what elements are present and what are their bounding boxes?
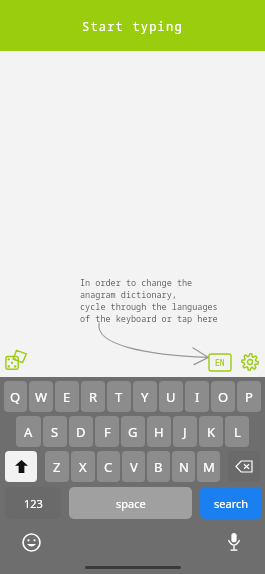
button[interactable]: EN	[209, 354, 231, 371]
staticText: K	[207, 423, 216, 441]
staticText: Y	[141, 388, 149, 406]
staticText: G	[128, 423, 138, 441]
staticText: D	[76, 423, 86, 441]
staticText: search	[214, 496, 249, 511]
button[interactable]: F	[95, 416, 119, 447]
staticText: 123	[24, 496, 43, 511]
button[interactable]: Q	[4, 381, 27, 412]
button[interactable]: I	[185, 381, 209, 412]
staticText: anagram dictionary,	[80, 289, 177, 301]
button[interactable]: Settings	[239, 351, 261, 373]
staticText: Z	[53, 458, 61, 476]
button[interactable]: J	[173, 416, 197, 447]
button[interactable]: S	[43, 416, 67, 447]
staticText: P	[245, 388, 253, 406]
button[interactable]: D	[69, 416, 93, 447]
button[interactable]: M	[197, 451, 220, 482]
staticText: EN	[215, 357, 225, 368]
button[interactable]: Y	[133, 381, 157, 412]
staticText: A	[24, 423, 33, 441]
staticText: cycle through the languages	[80, 301, 218, 313]
button[interactable]: B	[147, 451, 170, 482]
button[interactable]: Start typing	[0, 0, 265, 51]
button[interactable]: R	[81, 381, 105, 412]
button[interactable]: Z	[45, 451, 69, 482]
button[interactable]: A	[16, 416, 41, 447]
button[interactable]: search	[200, 487, 262, 519]
button[interactable]: E	[55, 381, 79, 412]
staticText: Start typing	[82, 18, 183, 34]
staticText: S	[51, 423, 59, 441]
button[interactable]: N	[172, 451, 195, 482]
staticText: W	[35, 388, 48, 406]
staticText: U	[166, 388, 176, 406]
button[interactable]: C	[97, 451, 120, 482]
button[interactable]: T	[107, 381, 131, 412]
button[interactable]: P	[237, 381, 261, 412]
staticText: R	[89, 388, 98, 406]
staticText: space	[116, 496, 146, 511]
staticText: F	[104, 423, 111, 441]
button[interactable]: 123	[5, 487, 61, 519]
button[interactable]: Shuffle anagram	[3, 347, 29, 373]
staticText: In order to change the	[80, 277, 193, 289]
button[interactable]: Voice input	[221, 529, 247, 555]
button[interactable]: K	[199, 416, 223, 447]
staticText: T	[115, 388, 123, 406]
staticText: B	[154, 458, 163, 476]
staticText: Q	[10, 388, 21, 406]
button[interactable]: H	[147, 416, 171, 447]
staticText: J	[183, 423, 187, 441]
staticText: V	[130, 458, 138, 476]
staticText: N	[179, 458, 189, 476]
staticText: C	[104, 458, 113, 476]
button[interactable]: L	[225, 416, 249, 447]
staticText: O	[218, 388, 229, 406]
staticText: of the keyboard or tap here	[80, 313, 218, 325]
button[interactable]: V	[122, 451, 145, 482]
button[interactable]: X	[71, 451, 95, 482]
button[interactable]: space	[69, 487, 192, 519]
button[interactable]: Emoji	[18, 529, 44, 555]
button[interactable]: U	[159, 381, 183, 412]
button[interactable]: O	[211, 381, 235, 412]
button[interactable]: W	[29, 381, 53, 412]
staticText: I	[195, 388, 200, 406]
button[interactable]: Backspace	[228, 451, 260, 482]
staticText: L	[234, 423, 241, 441]
staticText: E	[63, 388, 71, 406]
staticText: M	[203, 458, 215, 476]
button[interactable]: Shift	[5, 451, 37, 482]
staticText: H	[154, 423, 164, 441]
staticText: X	[79, 458, 87, 476]
button[interactable]: G	[121, 416, 145, 447]
